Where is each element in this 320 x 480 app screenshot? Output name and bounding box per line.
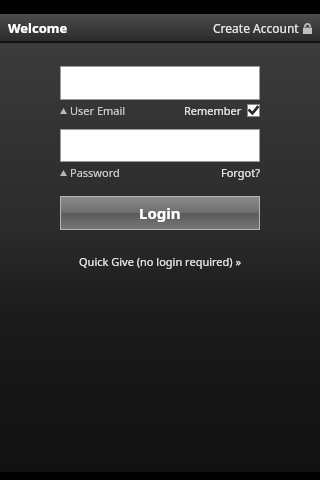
other: Secure: [303, 23, 312, 34]
staticText: Create Account: [213, 20, 299, 36]
button[interactable]: [60, 129, 260, 162]
staticText: Remember: [184, 103, 242, 118]
staticText: Welcome: [8, 19, 68, 37]
staticText: Password: [70, 165, 120, 180]
button[interactable]: [60, 66, 260, 100]
staticText: Login: [139, 203, 181, 223]
button[interactable]: Remember: [184, 103, 260, 118]
button[interactable]: Login: [60, 196, 260, 230]
staticText: User Email: [70, 103, 126, 118]
button[interactable]: Forgot?: [221, 165, 260, 180]
button[interactable]: Create Account: [205, 16, 320, 40]
button[interactable]: Quick Give (no login required) »: [79, 254, 242, 269]
